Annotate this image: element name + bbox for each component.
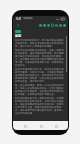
button[interactable]: Back — [21, 122, 29, 130]
staticText: 深度 — [15, 34, 22, 38]
button[interactable]: Search — [46, 22, 50, 29]
staticText: 4G — [56, 17, 60, 20]
button[interactable]: Home — [37, 122, 45, 130]
button[interactable]: Comment — [54, 22, 58, 29]
staticText: 在碎片化阅读盛行的今天，保持专注和耐心显得尤为重要。只有沉下心来，才能真正理解作… — [15, 68, 64, 83]
staticText: 每一次认真的阅读，都是一次与作者的深度对话，也是一次自我成长的机会。让我们重新拾… — [15, 84, 64, 96]
button[interactable]: Share — [58, 22, 62, 29]
button[interactable]: Bookmark — [50, 22, 54, 29]
staticText: 9:41 — [16, 17, 22, 21]
button[interactable]: Theme — [42, 22, 46, 29]
button[interactable]: Font — [38, 22, 42, 29]
button[interactable]: More — [62, 22, 66, 29]
staticText: 阅读不仅仅是获取知识的途径，更是一种思考方式的训练。通过持续的深度阅读，我们能够… — [15, 49, 64, 67]
staticText: 在这个信息爆炸的时代，我们每天都会接触到大量的内容。如何从中筛选出真正有价值的信… — [15, 39, 64, 48]
staticText: 知识的积累从来不是一蹴而就的过程，它需要时间的沉淀与反复的思考。当我们真正沉浸其… — [15, 97, 64, 115]
button[interactable]: Back — [15, 23, 20, 28]
staticText: 中国移动 — [23, 17, 33, 20]
button[interactable]: Category tag — [15, 30, 21, 33]
button[interactable]: Recents — [52, 122, 60, 130]
